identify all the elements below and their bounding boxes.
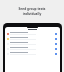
button[interactable] — [5, 46, 60, 51]
button[interactable] — [5, 31, 60, 36]
button[interactable] — [5, 36, 60, 41]
button[interactable] — [5, 41, 60, 46]
button[interactable] — [5, 51, 60, 56]
staticText: Send group texts individually — [0, 7, 64, 16]
